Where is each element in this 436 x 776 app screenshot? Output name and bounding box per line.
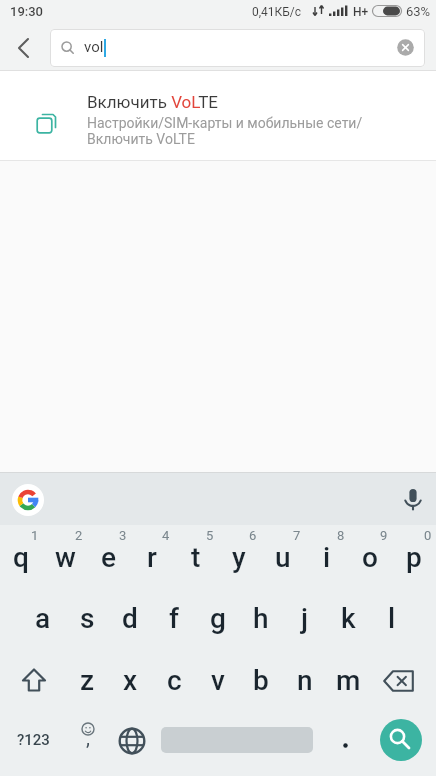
button[interactable]: l [0,525,44,569]
button[interactable]: q [0,525,44,569]
button[interactable]: e [0,525,44,569]
staticText: , [86,726,90,749]
staticText: 5 [206,528,214,543]
button[interactable]: v [0,525,44,569]
button[interactable]: k [0,525,44,569]
staticText: e [101,541,117,574]
staticText: vol [84,38,104,56]
staticText: a [35,602,51,635]
button[interactable]: u [0,525,44,569]
staticText: 6 [249,528,257,543]
staticText: w [55,541,76,574]
staticText: Настройки/SIM-карты и мобильные сети/ Вк… [87,115,363,147]
staticText: o [362,541,378,574]
staticText: m [336,664,361,697]
staticText: 4 [162,528,170,543]
button[interactable]: c [0,525,44,569]
button[interactable] [397,39,414,56]
staticText: j [301,602,309,635]
staticText: v [211,664,225,697]
button[interactable] [380,719,422,761]
button[interactable]: o [0,525,44,569]
button[interactable]: z [0,525,44,569]
staticText: p [406,541,422,574]
button[interactable]: vol [50,29,425,67]
button[interactable]: j [0,525,44,569]
staticText: l [388,602,396,635]
button[interactable]: b [0,525,44,569]
staticText: t [191,541,201,574]
button[interactable]: r [0,525,44,569]
staticText: 19:30 [10,4,44,19]
button[interactable]: m [0,525,44,569]
staticText: 9 [380,528,388,543]
staticText: q [13,541,29,574]
staticText: n [297,664,313,697]
button[interactable]: Включить VoLTE [0,71,436,161]
button[interactable] [337,732,354,749]
button[interactable]: y [0,525,44,569]
staticText: 63% [406,4,431,19]
staticText: ?123 [17,731,50,749]
button[interactable] [14,38,34,58]
button[interactable]: f [0,525,44,569]
staticText: k [341,602,356,635]
button[interactable]: , [65,718,109,762]
staticText: z [80,664,95,697]
staticText: y [232,541,246,574]
button[interactable]: a [0,525,44,569]
staticText: 3 [119,528,127,543]
button[interactable] [118,727,146,755]
staticText: g [210,602,226,635]
staticText: 0,41КБ/с [252,5,302,19]
button[interactable]: p [0,525,44,569]
staticText: h [253,602,269,635]
staticText: u [275,541,291,574]
staticText: d [122,602,138,635]
button[interactable]: g [0,525,44,569]
staticText: s [80,602,95,635]
staticText: c [167,664,182,697]
staticText: 1 [31,528,39,543]
button[interactable] [401,488,425,514]
staticText: 0 [424,528,432,543]
staticText: 2 [75,528,83,543]
staticText: i [323,541,331,574]
staticText: Включить VoLTE [87,92,218,112]
staticText: b [253,664,269,697]
button[interactable]: n [0,525,44,569]
staticText: r [147,541,157,574]
button[interactable] [20,668,48,694]
button[interactable] [12,484,44,516]
button[interactable]: w [0,525,44,569]
button[interactable]: s [0,525,44,569]
button[interactable] [383,670,415,693]
button[interactable]: t [0,525,44,569]
button[interactable]: x [0,525,44,569]
staticText: 7 [293,528,301,543]
button[interactable]: ?123 [0,525,56,569]
button[interactable]: d [0,525,44,569]
staticText: x [123,664,138,697]
button[interactable]: i [0,525,44,569]
staticText: f [169,602,179,635]
button[interactable]: h [0,525,44,569]
staticText: H+ [353,5,369,19]
staticText: 8 [337,528,345,543]
